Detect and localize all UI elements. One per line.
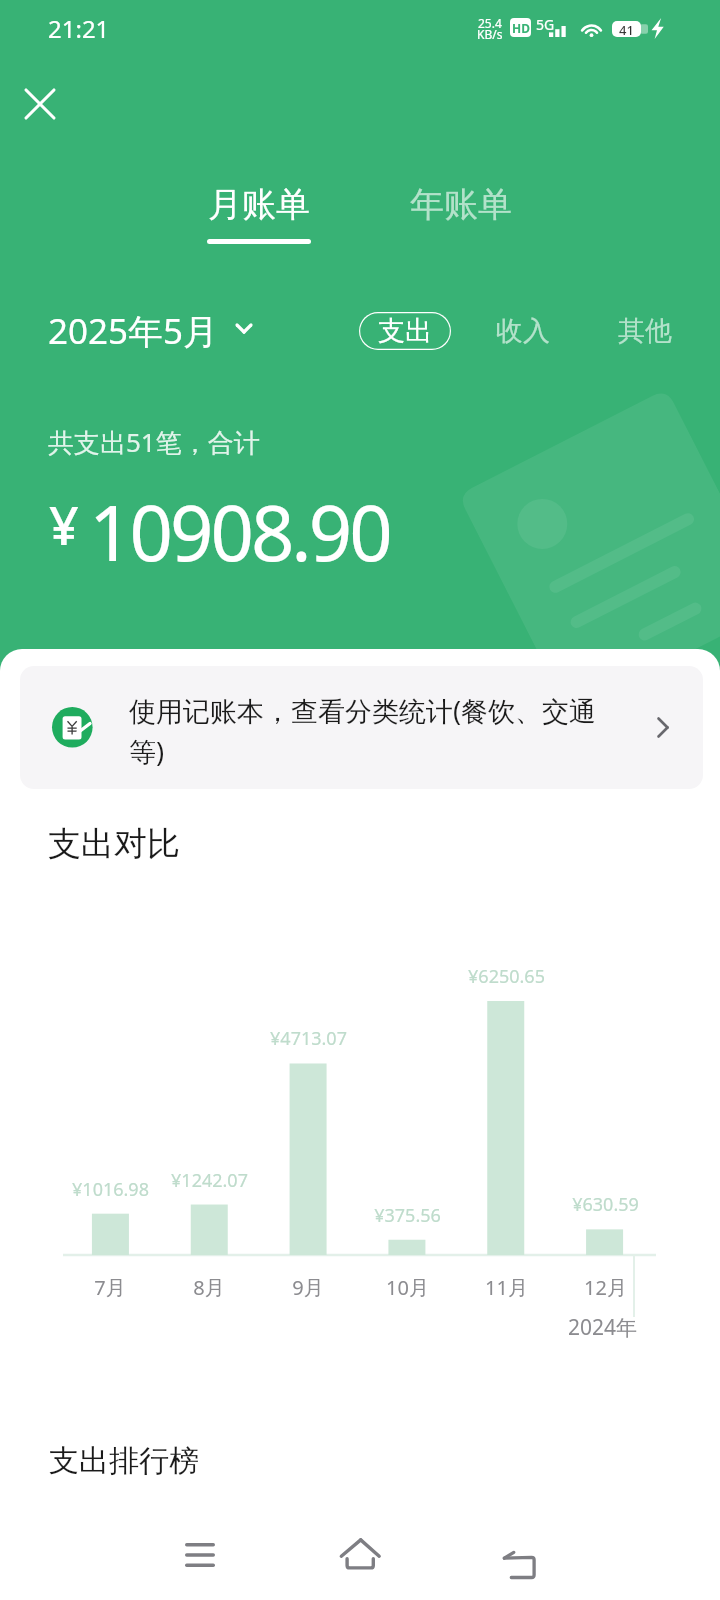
staticText: 9月 (292, 1274, 324, 1301)
button[interactable]: 支出 (359, 312, 451, 350)
staticText: ¥1242.07 (171, 1168, 248, 1193)
staticText: ¥1016.98 (72, 1177, 149, 1202)
button[interactable]: Home (321, 1522, 401, 1588)
button[interactable]: Back (479, 1522, 559, 1588)
staticText: KB/s (477, 26, 503, 42)
staticText: 11月 (485, 1274, 528, 1301)
staticText: HD (512, 20, 530, 36)
staticText: 共支出51笔，合计 (48, 424, 260, 460)
staticText: 7月 (94, 1274, 126, 1301)
staticText: 收入 (496, 314, 550, 348)
staticText: 25.4 (478, 15, 502, 31)
staticText: ¥375.56 (374, 1203, 441, 1228)
staticText: 41 (619, 21, 634, 37)
staticText: 支出对比 (48, 823, 180, 865)
staticText: 其他 (618, 314, 672, 348)
staticText: 年账单 (410, 183, 512, 226)
staticText: ¥6250.65 (468, 964, 545, 989)
staticText: ¥4713.07 (270, 1026, 347, 1051)
staticText: ¥ (49, 489, 79, 560)
staticText: ¥630.59 (572, 1192, 639, 1217)
button[interactable]: 年账单 (380, 183, 542, 253)
staticText: 12月 (584, 1274, 627, 1301)
staticText: 21:21 (48, 12, 110, 45)
button[interactable]: 收入 (494, 312, 552, 350)
staticText: 2025年5月 (48, 307, 219, 349)
staticText: 2024年 (568, 1313, 638, 1342)
button[interactable]: 其他 (616, 312, 674, 350)
button[interactable]: 使用记账本，查看分类统计(餐饮、交通等) (20, 666, 703, 789)
staticText: 10月 (386, 1274, 429, 1301)
staticText: 8月 (193, 1274, 225, 1301)
button[interactable]: Close (12, 76, 68, 132)
button[interactable]: Recent apps (160, 1522, 240, 1588)
button[interactable]: 2025年5月 (48, 307, 253, 349)
staticText: 支出排行榜 (49, 1442, 199, 1480)
staticText: 月账单 (208, 183, 310, 226)
staticText: 使用记账本，查看分类统计(餐饮、交通等) (129, 692, 629, 770)
button[interactable]: 月账单 (178, 183, 340, 244)
staticText: 支出 (378, 314, 432, 348)
staticText: 10908.90 (89, 480, 390, 584)
staticText: 5G (536, 15, 555, 34)
